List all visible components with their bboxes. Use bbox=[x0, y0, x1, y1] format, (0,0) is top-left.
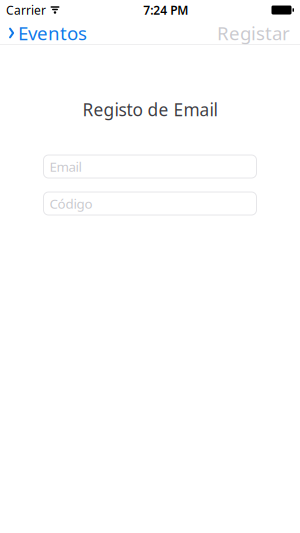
staticText: Eventos bbox=[18, 21, 87, 45]
button[interactable]: Eventos bbox=[0, 21, 95, 45]
button[interactable]: Registar bbox=[209, 21, 300, 45]
staticText: Carrier bbox=[6, 2, 46, 18]
staticText: Registar bbox=[217, 21, 290, 45]
staticText: Registo de Email bbox=[82, 98, 217, 121]
staticText: Código bbox=[49, 195, 92, 212]
staticText: 7:24 PM bbox=[143, 2, 188, 18]
staticText: Email bbox=[49, 158, 81, 175]
